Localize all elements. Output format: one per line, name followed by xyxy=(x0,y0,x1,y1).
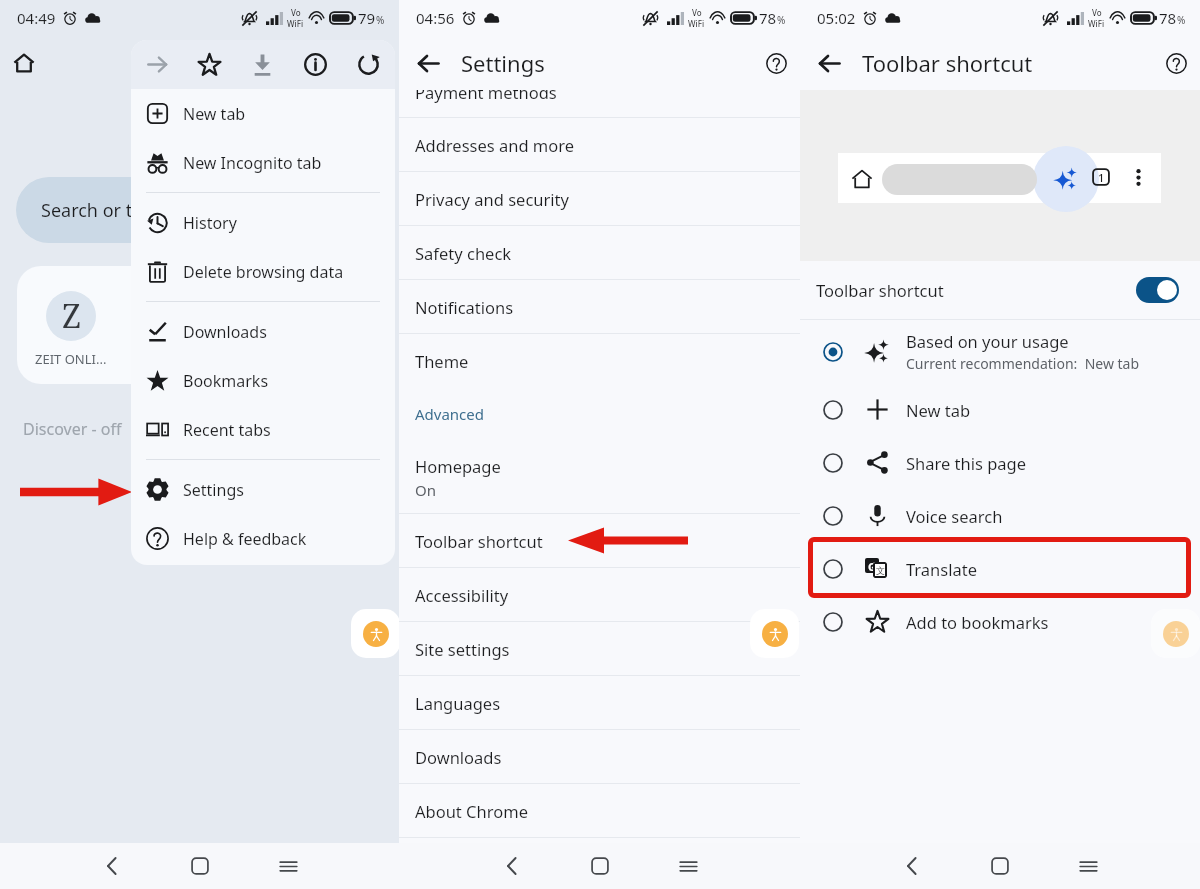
button[interactable]: New Incognito tab xyxy=(131,138,395,187)
button[interactable]: Home xyxy=(977,843,1023,889)
button[interactable]: Notifications xyxy=(399,280,800,333)
button[interactable]: Voice search xyxy=(800,489,1200,542)
button[interactable]: Recents xyxy=(265,843,311,889)
staticText: Add to bookmarks xyxy=(906,611,1049,633)
staticText: 78 xyxy=(759,8,777,28)
button[interactable]: Recents xyxy=(665,843,711,889)
staticText: Settings xyxy=(183,479,244,501)
staticText: Site settings xyxy=(415,638,510,660)
staticText: Discover - off xyxy=(23,418,122,440)
button[interactable]: Home xyxy=(577,843,623,889)
staticText: Z xyxy=(62,294,81,338)
button[interactable]: Forward xyxy=(131,40,183,89)
staticText: 79 xyxy=(358,8,376,28)
staticText: F xyxy=(151,294,170,338)
staticText: Privacy and security xyxy=(415,188,569,210)
staticText: Downloads xyxy=(183,321,267,343)
button[interactable]: Reload xyxy=(342,40,395,89)
staticText: 04:56 xyxy=(416,8,455,28)
staticText: WiFi xyxy=(688,18,705,29)
button[interactable]: Bookmark xyxy=(183,40,236,89)
staticText: Safety check xyxy=(415,242,512,264)
button[interactable]: New tab xyxy=(131,89,395,138)
button[interactable]: Help xyxy=(756,43,796,83)
button[interactable]: Delete browsing data xyxy=(131,247,395,296)
staticText: % xyxy=(1177,13,1186,27)
button[interactable]: Downloads xyxy=(399,730,800,783)
button[interactable]: Toolbar shortcut xyxy=(399,514,800,567)
button[interactable]: About Chrome xyxy=(399,784,800,837)
button[interactable]: Help xyxy=(1156,43,1196,83)
staticText: Payment methods xyxy=(415,90,557,103)
button[interactable]: Privacy and security xyxy=(399,172,800,225)
button[interactable]: Accessibility xyxy=(399,568,800,621)
button[interactable]: Recent tabs xyxy=(131,405,395,454)
button[interactable]: Languages xyxy=(399,676,800,729)
button[interactable]: Accessibility xyxy=(351,609,400,658)
button[interactable]: Back xyxy=(406,41,450,85)
button[interactable]: Home xyxy=(1,40,47,86)
staticText: Advanced xyxy=(415,404,485,424)
button[interactable]: Page info xyxy=(289,40,342,89)
button[interactable]: G xyxy=(800,542,1200,595)
button[interactable]: Back xyxy=(807,41,851,85)
staticText: On xyxy=(415,480,436,500)
button[interactable]: History xyxy=(131,198,395,247)
staticText: New Incognito tab xyxy=(183,152,322,174)
button[interactable]: Downloads xyxy=(131,307,395,356)
staticText: Vo xyxy=(692,7,702,18)
button[interactable]: Help & feedback xyxy=(131,514,395,563)
staticText: 文 xyxy=(876,565,885,576)
staticText: Help & feedback xyxy=(183,528,307,550)
button[interactable]: Back xyxy=(489,843,535,889)
staticText: Addresses and more xyxy=(415,134,575,156)
staticText: ZEIT ONLI... xyxy=(35,350,107,368)
staticText: Notifications xyxy=(415,296,514,318)
staticText: Search or type URL xyxy=(41,198,202,223)
staticText: Settings xyxy=(461,48,545,78)
staticText: Voice search xyxy=(906,505,1003,527)
staticText: New tab xyxy=(906,399,971,421)
staticText: Share this page xyxy=(906,452,1027,474)
staticText: 78 xyxy=(1159,8,1177,28)
staticText: Recent tabs xyxy=(183,419,271,441)
staticText: Vo xyxy=(291,7,301,18)
staticText: Current recommendation: New tab xyxy=(906,354,1140,373)
staticText: WiFi xyxy=(287,18,304,29)
staticText: 04:49 xyxy=(17,8,56,28)
button[interactable]: Back xyxy=(889,843,935,889)
staticText: Translate xyxy=(906,558,977,580)
button[interactable]: Settings xyxy=(131,465,395,514)
button[interactable]: Theme xyxy=(399,334,800,387)
staticText: Vo xyxy=(1092,7,1102,18)
button[interactable]: Back xyxy=(89,843,135,889)
button[interactable]: Search or type URL xyxy=(16,177,336,243)
button[interactable]: Accessibility xyxy=(750,609,799,658)
staticText: History xyxy=(183,212,237,234)
button[interactable]: Recents xyxy=(1065,843,1111,889)
staticText: WiFi xyxy=(1088,18,1105,29)
staticText: Toolbar shortcut xyxy=(816,279,944,301)
button[interactable]: Home xyxy=(177,843,223,889)
staticText: Downloads xyxy=(415,746,502,768)
staticText: About Chrome xyxy=(415,800,528,822)
staticText: Bookmarks xyxy=(183,370,269,392)
button[interactable]: Payment methods xyxy=(399,90,800,117)
button[interactable]: Based on your usage xyxy=(800,320,1200,383)
button[interactable]: Bookmarks xyxy=(131,356,395,405)
button[interactable]: F xyxy=(135,291,185,341)
button[interactable]: Toolbar shortcut xyxy=(800,261,1200,319)
button[interactable]: Z xyxy=(46,291,96,341)
button[interactable]: Share this page xyxy=(800,436,1200,489)
button[interactable]: Download xyxy=(236,40,289,89)
button[interactable]: Addresses and more xyxy=(399,118,800,171)
button[interactable]: Accessibility xyxy=(1151,609,1200,658)
staticText: Accessibility xyxy=(415,584,509,606)
staticText: G xyxy=(868,559,876,573)
button[interactable]: Add to bookmarks xyxy=(800,595,1200,648)
button[interactable]: Site settings xyxy=(399,622,800,675)
button[interactable]: Homepage xyxy=(399,441,800,513)
button[interactable]: Safety check xyxy=(399,226,800,279)
staticText: Based on your usage xyxy=(906,330,1069,352)
button[interactable]: New tab xyxy=(800,383,1200,436)
